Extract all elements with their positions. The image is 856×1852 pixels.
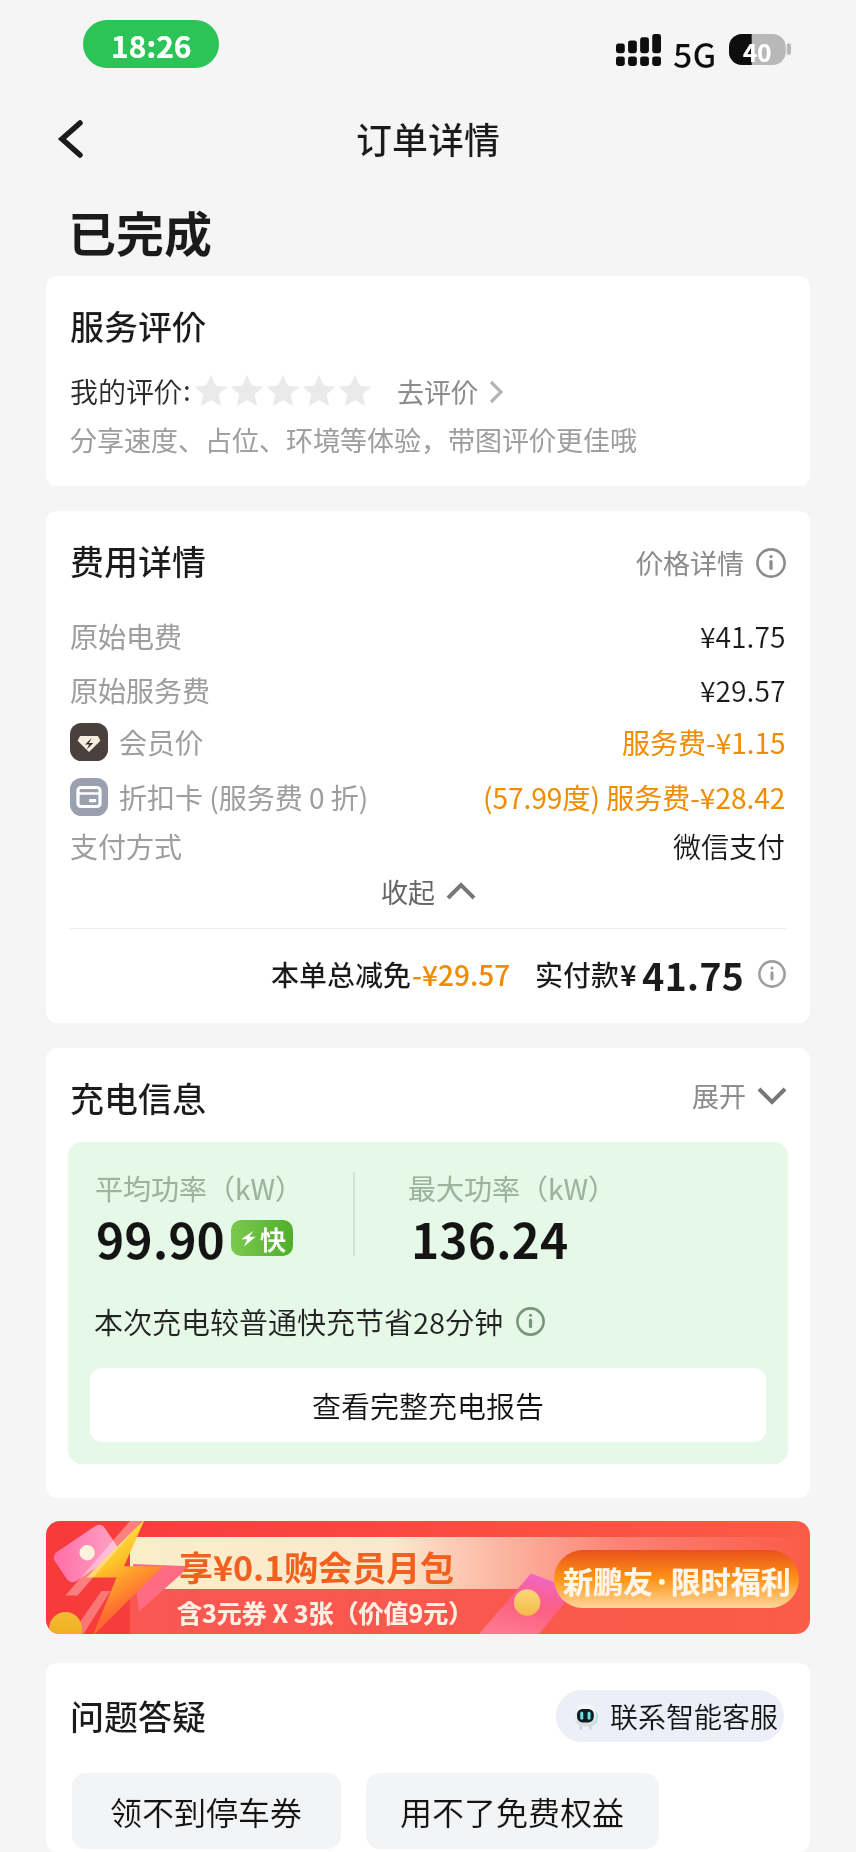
staticText: ¥ — [620, 954, 637, 995]
staticText: 微信支付 — [673, 826, 786, 867]
staticText: 展开 — [692, 1076, 746, 1115]
staticText: 40 — [743, 34, 772, 65]
staticText: 含3元券 X 3张（价值9元） — [177, 1594, 474, 1630]
staticText: 本次充电较普通快充节省28分钟 — [94, 1300, 504, 1342]
button[interactable]: 享¥0.1购会员月包 — [46, 1521, 810, 1634]
staticText: 5G — [673, 29, 717, 78]
staticText: 41.75 — [642, 947, 745, 1002]
button[interactable]: Back — [36, 104, 106, 174]
staticText: 问题答疑 — [70, 1691, 206, 1740]
staticText: 享¥0.1购会员月包 — [179, 1542, 455, 1591]
staticText: -¥29.57 — [412, 954, 511, 995]
staticText: 去评价 — [397, 372, 478, 411]
staticText: 价格详情 — [636, 543, 744, 582]
staticText: 新鹏友·限时福利 — [563, 1558, 791, 1601]
staticText: (57.99度) 服务费-¥28.42 — [483, 777, 786, 818]
staticText: 收起 — [381, 872, 435, 911]
staticText: 最大功率（kW） — [408, 1168, 617, 1209]
staticText: 分享速度、占位、环境等体验，带图评价更佳哦 — [70, 420, 637, 459]
staticText: 服务评价 — [70, 301, 206, 350]
staticText: 136.24 — [411, 1203, 569, 1273]
staticText: 联系智能客服 — [610, 1696, 779, 1737]
staticText: 99.90 — [96, 1203, 225, 1273]
staticText: 已完成 — [68, 196, 213, 266]
staticText: 支付方式 — [70, 826, 183, 867]
button[interactable]: 查看完整充电报告 — [90, 1368, 766, 1442]
button[interactable]: 展开 — [684, 1068, 794, 1123]
staticText: 本单总减免 — [271, 954, 412, 995]
staticText: 用不了免费权益 — [400, 1788, 625, 1834]
staticText: 折扣卡 (服务费 0 折) — [119, 777, 369, 818]
staticText: 订单详情 — [356, 112, 501, 164]
button[interactable]: 联系智能客服 — [556, 1690, 784, 1742]
button[interactable]: 我的评价 — [70, 371, 502, 412]
staticText: ¥29.57 — [700, 670, 786, 711]
button[interactable]: 收起 — [46, 869, 810, 913]
button[interactable]: 价格详情 — [628, 535, 794, 590]
staticText: 原始电费 — [70, 616, 183, 657]
staticText: 平均功率（kW） — [95, 1168, 304, 1209]
staticText: 充电信息 — [70, 1073, 206, 1122]
staticText: 查看完整充电报告 — [312, 1384, 545, 1426]
staticText: ¥41.75 — [700, 616, 786, 657]
staticText: 快 — [260, 1220, 287, 1256]
staticText: 18:26 — [111, 23, 192, 66]
staticText: : — [183, 369, 191, 410]
staticText: 费用详情 — [70, 536, 206, 585]
staticText: 原始服务费 — [70, 670, 211, 711]
staticText: 服务费-¥1.15 — [622, 722, 786, 763]
button[interactable]: 用不了免费权益 — [366, 1773, 659, 1849]
staticText: 实付款 — [535, 954, 620, 995]
staticText: 我的评价 — [70, 371, 183, 412]
button[interactable]: 领不到停车券 — [72, 1773, 341, 1849]
staticText: 领不到停车券 — [110, 1788, 303, 1834]
staticText: 会员价 — [119, 722, 204, 763]
